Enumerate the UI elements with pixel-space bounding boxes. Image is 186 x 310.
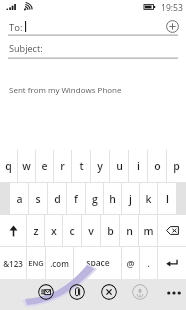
button[interactable]: v [82,215,100,246]
staticText: n [126,224,133,238]
button[interactable]: u [110,150,128,182]
button[interactable]: .com [46,247,73,279]
staticText: m [143,224,154,238]
button[interactable]: e [36,150,53,182]
button[interactable]: t [72,150,90,182]
button[interactable]: n [120,215,138,246]
staticText: u [116,159,123,173]
staticText: g [92,192,98,206]
button[interactable]: b [101,215,119,246]
button[interactable]: Enter [158,247,186,279]
button[interactable]: m [139,215,157,246]
staticText: h [109,192,116,206]
button[interactable]: l [158,183,176,214]
button[interactable] [8,41,178,57]
button[interactable]: j [122,183,139,214]
staticText: q [5,159,12,173]
staticText: w [22,159,31,173]
button[interactable]: &123 [0,247,26,279]
button[interactable]: Backspace [158,215,186,246]
button[interactable]: @ [122,247,139,279]
button[interactable]: ENG [27,247,45,279]
button[interactable]: Voice [132,284,148,300]
button[interactable]: y [91,150,109,182]
button[interactable]: g [86,183,103,214]
button[interactable]: r [54,150,71,182]
staticText: i [137,159,140,173]
staticText: b [107,224,114,238]
staticText: r [60,159,65,173]
staticText: Subject: [9,42,43,54]
staticText: ENG [28,258,44,268]
button[interactable]: q [0,150,17,182]
button[interactable]: Add recipient [164,18,180,34]
staticText: e [41,159,48,173]
button[interactable]: o [148,150,166,182]
staticText: k [145,192,152,206]
staticText: p [173,159,180,173]
button[interactable]: Attach [69,284,85,300]
staticText: &123 [3,258,23,269]
staticText: y [97,159,103,173]
staticText: v [88,224,94,238]
button[interactable]: d [48,183,66,214]
staticText: @ [126,257,135,269]
button[interactable]: p [167,150,186,182]
staticText: l [166,192,169,206]
button[interactable]: . [140,247,157,279]
staticText: o [154,159,161,173]
staticText: space [86,257,110,269]
staticText: Sent from my Windows Phone [9,84,122,95]
staticText: a [16,192,23,206]
button[interactable]: s [29,183,47,214]
button[interactable]: f [67,183,85,214]
staticText: 19:53 [161,2,183,14]
button[interactable] [8,18,163,34]
button[interactable]: i [129,150,147,182]
button[interactable]: c [63,215,81,246]
button[interactable] [0,62,186,150]
button[interactable]: Send [38,284,54,300]
button[interactable]: space [74,247,121,279]
staticText: . [147,257,150,269]
button[interactable]: w [18,150,35,182]
button[interactable]: More options [162,279,186,310]
staticText: z [33,224,39,238]
button[interactable]: x [45,215,62,246]
staticText: c [69,224,75,238]
staticText: j [129,192,132,206]
staticText: f [74,192,78,206]
button[interactable]: a [10,183,28,214]
button[interactable]: k [140,183,157,214]
staticText: To: [9,21,23,34]
staticText: s [35,192,41,206]
button[interactable]: Close [101,284,117,300]
staticText: d [54,192,61,206]
staticText: t [79,159,84,173]
staticText: .com [50,258,69,269]
staticText: x [51,224,57,238]
button[interactable]: h [104,183,121,214]
button[interactable]: Shift [0,215,26,246]
button[interactable]: z [27,215,44,246]
